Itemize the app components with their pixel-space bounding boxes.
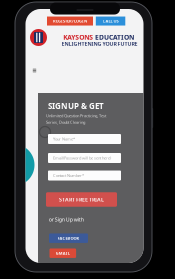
- button[interactable]: GMAIL: [49, 248, 76, 258]
- staticText: Contact Number*: [53, 173, 84, 178]
- staticText: GMAIL: [56, 250, 70, 256]
- staticText: or Sign Up with: [49, 216, 84, 223]
- staticText: SIGNUP & GET: [48, 101, 104, 111]
- staticText: START FREE TRIAL: [59, 196, 104, 203]
- staticText: ENLIGHTENING YOUR FUTURE: [62, 40, 138, 47]
- button[interactable]: START FREE TRIAL: [46, 192, 117, 207]
- staticText: FACEBOOK: [57, 235, 79, 241]
- button[interactable]: REGISTER/LOGIN: [47, 16, 93, 25]
- staticText: Email(Password will be sent here): [53, 155, 111, 161]
- staticText: REGISTER/LOGIN: [53, 18, 87, 24]
- staticText: Series, Doubt Clearing: [46, 120, 85, 125]
- button[interactable]: Menu: [30, 66, 39, 75]
- staticText: Your Name*: [53, 136, 75, 142]
- staticText: CALL US: [102, 18, 118, 24]
- button[interactable]: CALL US: [96, 16, 125, 25]
- staticText: KAYSONS: [63, 33, 93, 42]
- staticText: Unlimited Question Practicing, Test: [46, 113, 106, 118]
- button[interactable]: FACEBOOK: [49, 233, 88, 243]
- staticText: EDUCATION: [95, 33, 134, 42]
